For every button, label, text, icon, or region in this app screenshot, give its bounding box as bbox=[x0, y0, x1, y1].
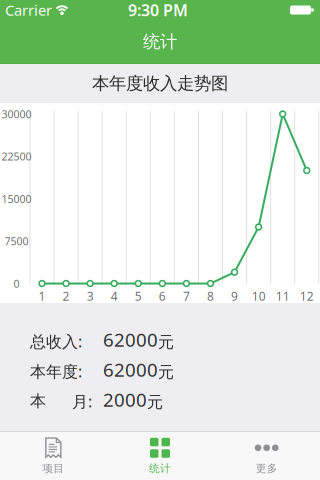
staticText: 1 bbox=[38, 288, 45, 304]
staticText: 月: bbox=[72, 391, 92, 412]
staticText: 7500 bbox=[4, 234, 28, 248]
staticText: 元 bbox=[158, 332, 174, 352]
staticText: 本年度收入走势图 bbox=[92, 73, 228, 94]
staticText: 6 bbox=[159, 288, 166, 304]
staticText: 9 bbox=[231, 288, 238, 304]
staticText: 0 bbox=[13, 276, 19, 291]
staticText: 元 bbox=[147, 392, 163, 412]
staticText: 22500 bbox=[1, 149, 31, 163]
staticText: 总收入: bbox=[30, 331, 82, 352]
staticText: 11 bbox=[276, 288, 290, 304]
staticText: 9:30 PM bbox=[128, 0, 188, 21]
button[interactable]: 统计 bbox=[107, 432, 213, 480]
staticText: 本 bbox=[30, 391, 46, 411]
staticText: 项目 bbox=[42, 462, 64, 475]
staticText: 2 bbox=[63, 288, 70, 304]
staticText: 4 bbox=[111, 288, 118, 304]
staticText: 统计 bbox=[149, 462, 171, 475]
staticText: 本年度: bbox=[30, 361, 82, 382]
staticText: 7 bbox=[183, 288, 190, 304]
staticText: 12 bbox=[300, 288, 314, 304]
staticText: 62000 bbox=[103, 357, 158, 382]
staticText: 元 bbox=[158, 362, 174, 382]
staticText: 统计 bbox=[143, 31, 177, 52]
staticText: Carrier bbox=[5, 0, 52, 20]
staticText: 3 bbox=[87, 288, 94, 304]
staticText: 更多 bbox=[256, 462, 278, 475]
staticText: 62000 bbox=[103, 327, 158, 352]
staticText: 5 bbox=[135, 288, 142, 304]
staticText: 10 bbox=[252, 288, 266, 304]
staticText: 30000 bbox=[1, 107, 31, 121]
button[interactable]: 更多 bbox=[213, 432, 320, 480]
staticText: 2000 bbox=[103, 387, 147, 412]
staticText: 15000 bbox=[1, 192, 31, 206]
staticText: 8 bbox=[207, 288, 214, 304]
button[interactable]: 项目 bbox=[0, 432, 107, 480]
